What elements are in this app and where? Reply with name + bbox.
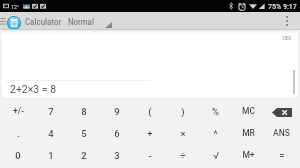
staticText: MR: [242, 128, 255, 138]
staticText: 75%: [268, 2, 281, 11]
staticText: 7: [48, 106, 54, 117]
button[interactable]: 2: [67, 144, 100, 166]
button[interactable]: 0: [2, 144, 34, 166]
staticText: +: [147, 128, 153, 139]
button[interactable]: 1: [34, 144, 67, 166]
staticText: MC: [242, 106, 255, 116]
staticText: =: [279, 150, 285, 161]
button[interactable]: More options: [280, 12, 300, 29]
button[interactable]: Backspace: [265, 100, 298, 122]
button[interactable]: ×: [166, 122, 199, 144]
button[interactable]: -: [133, 144, 166, 166]
staticText: 12°: [11, 3, 20, 10]
button[interactable]: Normal: [66, 12, 114, 29]
staticText: 5: [81, 128, 87, 139]
staticText: 3: [114, 150, 120, 161]
button[interactable]: (: [133, 100, 166, 122]
button[interactable]: 9: [100, 100, 133, 122]
staticText: ANS: [273, 128, 290, 138]
button[interactable]: Navigation menu: [0, 12, 7, 29]
staticText: √: [213, 150, 219, 161]
button[interactable]: 7: [34, 100, 67, 122]
staticText: +/-: [13, 106, 24, 116]
button[interactable]: ANS: [265, 122, 298, 144]
staticText: ^: [213, 128, 218, 139]
staticText: ): [181, 106, 185, 117]
staticText: (: [148, 106, 152, 117]
staticText: 2: [81, 150, 87, 161]
button[interactable]: 5: [67, 122, 100, 144]
button[interactable]: MR: [232, 122, 265, 144]
button[interactable]: +: [133, 122, 166, 144]
staticText: DEG: [283, 35, 292, 41]
staticText: 2+2×3 = 8: [10, 83, 57, 95]
staticText: 6: [114, 128, 120, 139]
staticText: 9:17: [283, 2, 297, 11]
button[interactable]: =: [265, 144, 298, 166]
button[interactable]: ): [166, 100, 199, 122]
button[interactable]: √: [199, 144, 232, 166]
button[interactable]: 6: [100, 122, 133, 144]
button[interactable]: 8: [67, 100, 100, 122]
button[interactable]: +/-: [2, 100, 34, 122]
button[interactable]: .: [2, 122, 34, 144]
button[interactable]: 4: [34, 122, 67, 144]
staticText: Calculator: [25, 17, 62, 28]
staticText: %: [212, 106, 219, 117]
staticText: .: [17, 128, 20, 139]
staticText: 8: [81, 106, 87, 117]
staticText: M+: [242, 150, 255, 160]
button[interactable]: %: [199, 100, 232, 122]
button[interactable]: MC: [232, 100, 265, 122]
staticText: 1: [48, 150, 54, 161]
staticText: 4: [48, 128, 54, 139]
button[interactable]: M+: [232, 144, 265, 166]
button[interactable]: ÷: [166, 144, 199, 166]
button[interactable]: 3: [100, 144, 133, 166]
staticText: -: [148, 150, 152, 161]
staticText: 9: [114, 106, 120, 117]
staticText: ×: [180, 128, 186, 139]
staticText: Normal: [68, 17, 94, 28]
button[interactable]: ^: [199, 122, 232, 144]
staticText: 0: [15, 150, 21, 161]
staticText: ÷: [180, 150, 186, 161]
other: Backspace: [272, 108, 292, 117]
